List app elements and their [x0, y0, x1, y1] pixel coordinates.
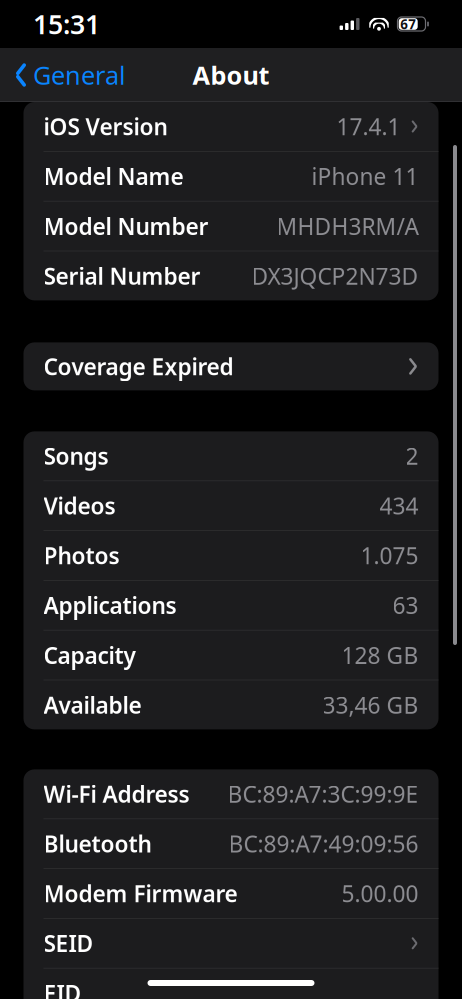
staticText: 434 [379, 491, 418, 521]
staticText: Available [43, 690, 141, 720]
staticText: 5.00.00 [341, 878, 418, 908]
staticText: Modem Firmware [43, 878, 237, 908]
button[interactable]: Modem Firmware [23, 869, 438, 918]
staticText: 1.075 [360, 540, 418, 570]
staticText: 67 [400, 15, 416, 33]
staticText: Bluetooth [43, 829, 151, 859]
staticText: MHDH3RM/A [276, 211, 418, 241]
staticText: Serial Number [43, 261, 200, 291]
staticText: DX3JQCP2N73D [251, 261, 418, 291]
button[interactable]: Serial Number [23, 251, 438, 300]
button[interactable]: Bluetooth [23, 819, 438, 868]
button[interactable]: Capacity [23, 631, 438, 680]
button[interactable]: SEID [23, 919, 438, 968]
button[interactable]: General [0, 52, 140, 98]
staticText: 33,46 GB [322, 690, 418, 720]
button[interactable]: Available [23, 680, 438, 729]
staticText: Capacity [43, 640, 135, 670]
staticText: General [33, 58, 126, 92]
staticText: Songs [43, 441, 108, 471]
staticText: 128 GB [341, 640, 418, 670]
staticText: Wi-Fi Address [43, 779, 189, 809]
staticText: 63 [392, 590, 418, 620]
button[interactable]: Wi-Fi Address [23, 769, 438, 818]
button[interactable]: Videos [23, 481, 438, 530]
staticText: Photos [43, 540, 119, 570]
staticText: 17.4.1 [336, 111, 400, 141]
button[interactable]: Photos [23, 531, 438, 580]
button[interactable]: EID [23, 969, 438, 999]
staticText: Model Number [43, 211, 208, 241]
staticText: Videos [43, 491, 115, 521]
button[interactable]: iOS Version [23, 102, 438, 151]
button[interactable]: Coverage Expired [23, 342, 438, 390]
staticText: 2 [405, 441, 418, 471]
staticText: iOS Version [43, 111, 167, 141]
button[interactable]: Model Name [23, 152, 438, 201]
staticText: Applications [43, 590, 176, 620]
staticText: SEID [43, 928, 93, 958]
staticText: BC:89:A7:3C:99:9E [227, 779, 418, 809]
staticText: EID [43, 978, 81, 999]
staticText: Coverage Expired [43, 351, 233, 381]
staticText: 15:31 [33, 6, 100, 42]
staticText: iPhone 11 [311, 161, 418, 191]
button[interactable]: Songs [23, 431, 438, 480]
staticText: BC:89:A7:49:09:56 [228, 829, 418, 859]
button[interactable]: Applications [23, 581, 438, 630]
staticText: Model Name [43, 161, 183, 191]
staticText: About [192, 58, 269, 92]
button[interactable]: Model Number [23, 202, 438, 251]
